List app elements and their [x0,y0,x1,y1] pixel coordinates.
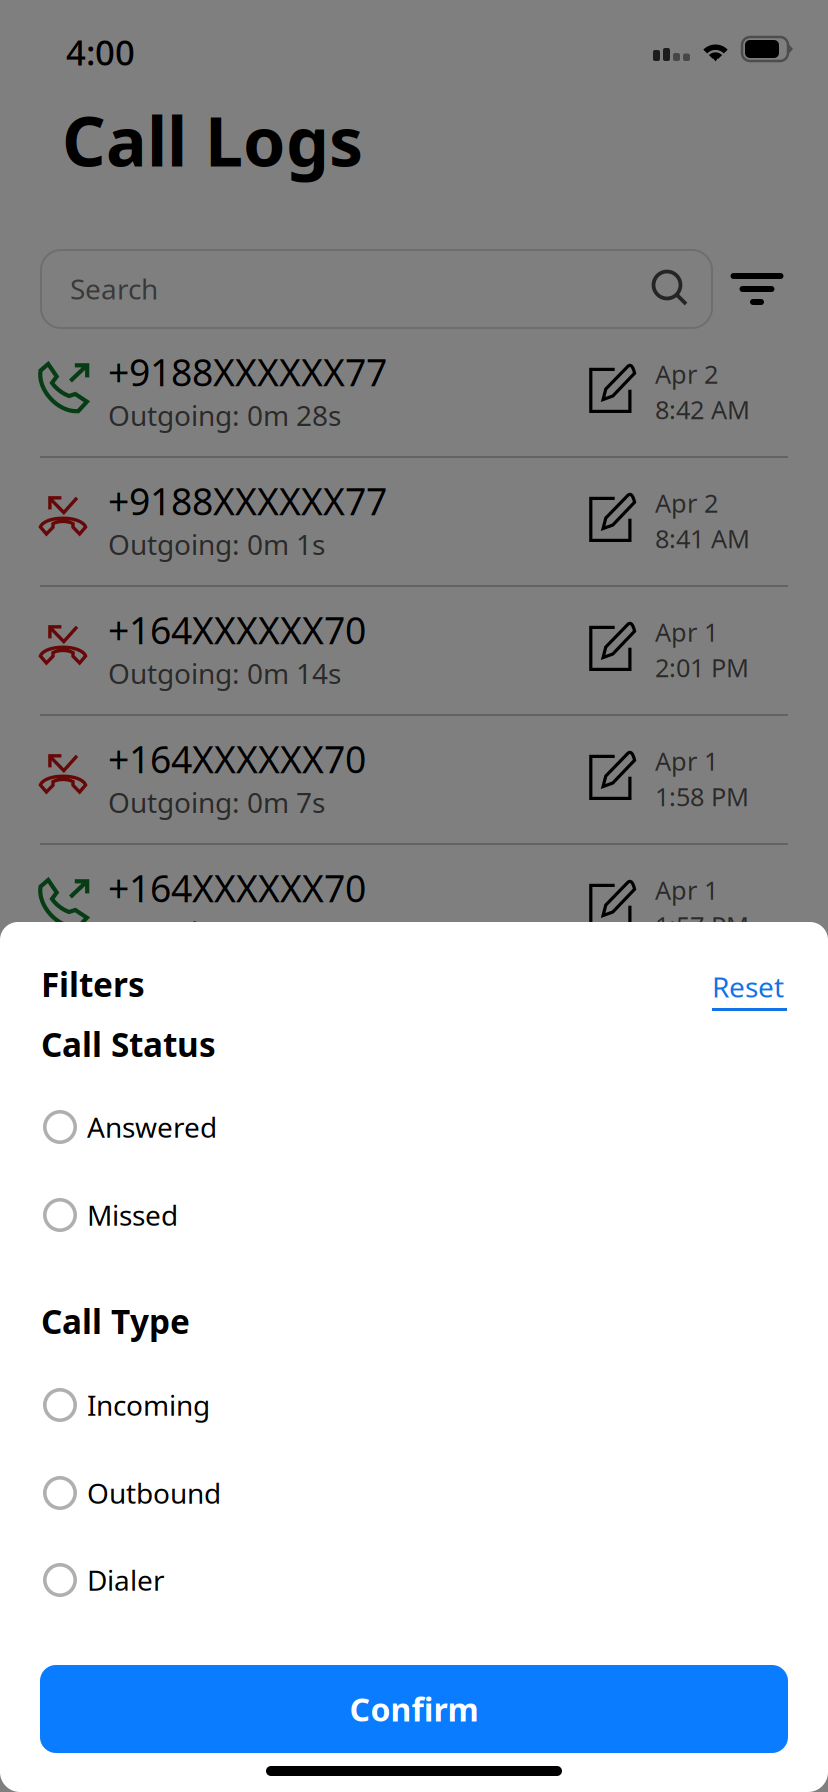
staticText: 1:57 PM [655,909,749,942]
staticText: 8:42 AM [655,393,750,426]
staticText: Confirm [349,1688,478,1730]
staticText: +9188XXXXXX77 [108,476,387,526]
button[interactable]: Confirm [40,1665,788,1753]
button[interactable]: Dialer [0,1543,828,1617]
staticText: Apr 1 [655,873,718,907]
staticText: Apr 2 [655,357,718,391]
button[interactable]: Answered [0,1090,828,1164]
staticText: 1:58 PM [655,780,749,813]
staticText: Outgoing: 0m 7s [108,784,325,821]
button[interactable]: +9188XXXXXX77 [0,329,828,456]
button[interactable]: +164XXXXXX70 [0,716,828,843]
button[interactable]: +9188XXXXXX77 [0,458,828,585]
button[interactable]: +164XXXXXX70 [0,587,828,714]
staticText: 8:41 AM [655,522,750,555]
staticText: Outbound [87,1474,221,1512]
staticText: +164XXXXXX70 [108,863,366,913]
staticText: +164XXXXXX70 [108,734,366,784]
button[interactable]: Incoming [0,1368,828,1442]
staticText: 4:00 [66,29,135,75]
staticText: Dialer [87,1561,165,1599]
staticText: Apr 1 [655,744,718,778]
staticText: Outgoing: 0m 30s [108,913,341,950]
staticText: +164XXXXXX70 [108,605,366,655]
staticText: Apr 2 [655,486,718,520]
staticText: Outgoing: 0m 1s [108,526,325,563]
staticText: Search [70,270,158,307]
button[interactable]: Missed [0,1178,828,1252]
staticText: Reset [712,968,784,1005]
staticText: Call Logs [62,95,363,185]
button[interactable]: Outbound [0,1456,828,1530]
staticText: 2:01 PM [655,651,749,684]
staticText: Missed [87,1196,178,1234]
staticText: +9188XXXXXX77 [108,347,387,397]
button[interactable]: Reset [712,968,828,1014]
staticText: Filters [41,962,145,1006]
button[interactable]: Filters [718,250,796,328]
staticText: Call Type [41,1299,190,1343]
staticText: Answered [87,1108,217,1146]
staticText: Call Status [41,1022,216,1066]
staticText: Outgoing: 0m 28s [108,397,341,434]
staticText: Outgoing: 0m 14s [108,655,341,692]
staticText: Apr 1 [655,615,718,649]
button[interactable]: +164XXXXXX70 [0,845,828,972]
staticText: Incoming [87,1386,210,1424]
